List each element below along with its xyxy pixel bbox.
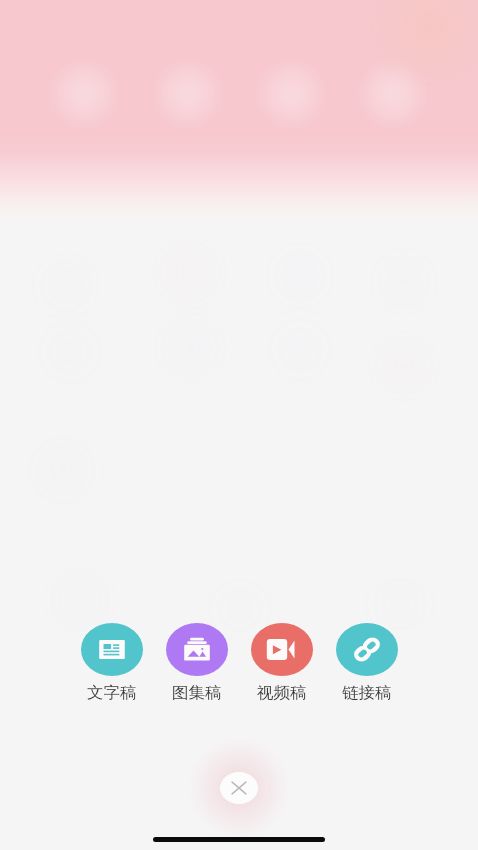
button[interactable]: 图集稿 bbox=[154, 623, 239, 703]
staticText: 图集稿 bbox=[172, 682, 222, 703]
button[interactable]: 视频稿 bbox=[239, 623, 324, 703]
button[interactable]: Close bbox=[220, 772, 258, 804]
button[interactable]: 链接稿 bbox=[324, 623, 409, 703]
staticText: 视频稿 bbox=[257, 682, 307, 703]
staticText: 文字稿 bbox=[87, 682, 137, 703]
button[interactable]: 文字稿 bbox=[69, 623, 154, 703]
staticText: 链接稿 bbox=[342, 682, 392, 703]
